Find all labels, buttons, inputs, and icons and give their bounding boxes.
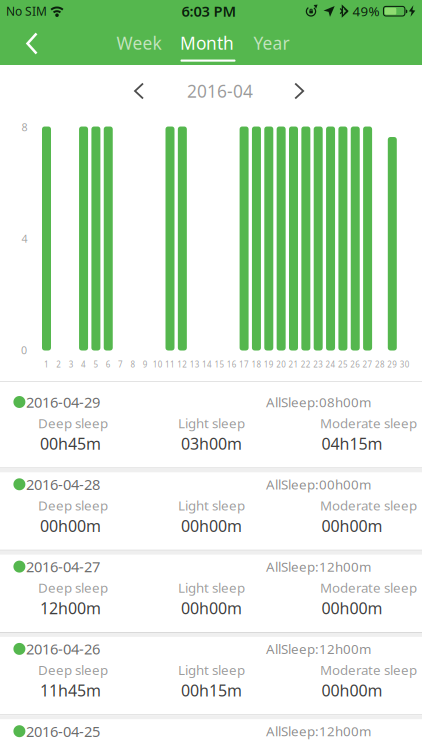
staticText: 28	[375, 359, 385, 370]
staticText: 18	[251, 359, 261, 370]
staticText: 4	[81, 359, 86, 370]
staticText: 11h45m	[40, 680, 101, 701]
staticText: AllSleep:12h00m	[266, 722, 371, 740]
staticText: 2	[56, 359, 61, 370]
staticText: 00h15m	[181, 680, 242, 701]
staticText: Moderate sleep	[320, 661, 417, 679]
staticText: Deep sleep	[38, 414, 108, 432]
staticText: 11	[165, 359, 175, 370]
staticText: 30	[400, 359, 410, 370]
staticText: 12h00m	[40, 597, 101, 619]
staticText: 2016-04-29	[26, 392, 100, 412]
staticText: 2016-04-25	[26, 721, 100, 741]
staticText: 5	[93, 359, 98, 370]
staticText: 00h00m	[321, 597, 382, 619]
staticText: Month	[180, 31, 234, 54]
staticText: 00h45m	[40, 433, 101, 454]
staticText: Year	[253, 31, 289, 54]
staticText: 10	[153, 359, 163, 370]
button[interactable]: Month	[0, 22, 422, 65]
staticText: 27	[363, 359, 373, 370]
staticText: 00h00m	[181, 515, 242, 536]
staticText: 21	[288, 359, 298, 370]
staticText: 00h00m	[40, 515, 101, 536]
staticText: 13	[190, 359, 200, 370]
staticText: 00h00m	[321, 515, 382, 536]
staticText: 20	[276, 359, 286, 370]
staticText: AllSleep:12h00m	[266, 558, 371, 575]
staticText: Light sleep	[178, 661, 245, 679]
staticText: 12	[177, 359, 187, 370]
staticText: 49%	[352, 2, 379, 20]
staticText: Light sleep	[178, 496, 245, 514]
staticText: 03h00m	[181, 433, 242, 454]
staticText: AllSleep:08h00m	[266, 393, 371, 411]
staticText: AllSleep:00h00m	[266, 475, 371, 493]
staticText: Moderate sleep	[320, 579, 417, 596]
staticText: AllSleep:12h00m	[266, 640, 371, 658]
staticText: 8	[21, 120, 27, 134]
staticText: 2016-04	[187, 79, 253, 102]
staticText: 3	[69, 359, 74, 370]
staticText: 6	[106, 359, 111, 370]
button[interactable]: Next month	[0, 65, 330, 105]
staticText: 4	[21, 231, 27, 246]
staticText: 6:03 PM	[181, 1, 236, 21]
staticText: 17	[239, 359, 249, 370]
staticText: 19	[264, 359, 274, 370]
staticText: Moderate sleep	[320, 496, 417, 514]
staticText: 00h00m	[321, 680, 382, 701]
staticText: 2016-04-28	[26, 475, 100, 494]
staticText: 7	[118, 359, 123, 370]
staticText: 14	[202, 359, 212, 370]
staticText: Deep sleep	[38, 661, 108, 679]
staticText: 23	[313, 359, 323, 370]
staticText: Light sleep	[178, 414, 245, 432]
staticText: Week	[116, 31, 161, 54]
staticText: No SIM	[6, 3, 47, 19]
staticText: Light sleep	[178, 579, 245, 596]
staticText: 04h15m	[321, 433, 382, 454]
staticText: 24	[326, 359, 336, 370]
staticText: 25	[338, 359, 348, 370]
staticText: 0	[21, 343, 27, 357]
staticText: Deep sleep	[38, 579, 108, 596]
button[interactable]: Week	[0, 22, 422, 65]
staticText: 15	[214, 359, 224, 370]
button[interactable]: Back	[0, 22, 54, 65]
staticText: 9	[143, 359, 148, 370]
staticText: 26	[350, 359, 360, 370]
staticText: 2016-04-27	[26, 557, 100, 576]
button[interactable]: Year	[0, 22, 422, 65]
staticText: Moderate sleep	[320, 414, 417, 432]
staticText: 16	[227, 359, 237, 370]
staticText: 22	[301, 359, 311, 370]
staticText: Deep sleep	[38, 496, 108, 514]
staticText: 8	[130, 359, 135, 370]
button[interactable]: Previous month	[0, 65, 160, 105]
staticText: 1	[44, 359, 49, 370]
staticText: 2016-04-26	[26, 639, 100, 659]
staticText: 00h00m	[181, 597, 242, 619]
staticText: 29	[387, 359, 397, 370]
